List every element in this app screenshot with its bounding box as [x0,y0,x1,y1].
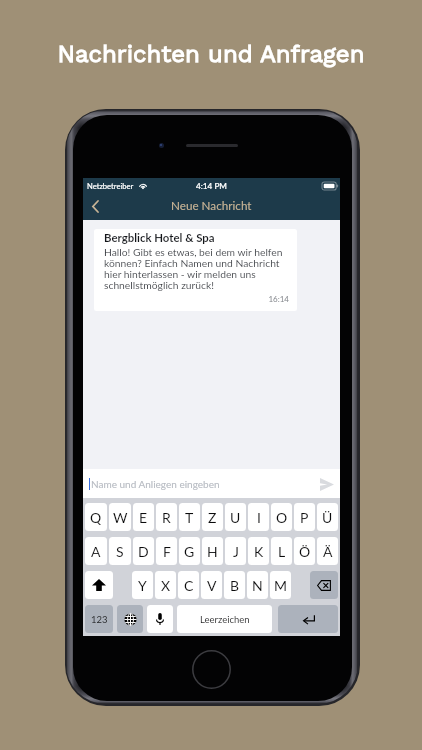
staticText: G [184,543,195,560]
button[interactable]: X [155,571,176,599]
button[interactable]: W [109,503,131,531]
staticText: B [230,577,240,594]
button[interactable]: Ü [317,503,338,531]
staticText: 4:14 PM [196,181,227,191]
staticText: T [185,509,194,526]
button[interactable]: Umschalt [85,571,113,599]
button[interactable]: J [225,537,246,565]
staticText: N [252,577,263,594]
button[interactable]: Sprache [117,605,143,633]
button[interactable]: P [294,503,315,531]
staticText: V [207,577,217,594]
button[interactable]: S [109,537,131,565]
staticText: Nachrichten und Anfragen [0,40,422,68]
button[interactable]: Senden [317,474,337,494]
staticText: A [91,543,101,560]
button[interactable]: I [248,503,269,531]
staticText: C [184,577,194,594]
staticText: Y [138,577,147,594]
staticText: U [230,509,241,526]
button[interactable]: Leerzeichen [177,605,272,633]
button[interactable]: O [271,503,292,531]
staticText: Ä [323,543,333,560]
button[interactable]: Zurück [83,194,107,220]
staticText: J [233,543,239,560]
staticText: F [163,543,171,560]
button[interactable]: Q [85,503,107,531]
staticText: 123 [91,614,108,625]
staticText: D [138,543,149,560]
button[interactable]: V [201,571,222,599]
button[interactable]: T [179,503,200,531]
button[interactable]: Bergblick Hotel & Spa [94,229,297,311]
staticText: Ü [322,509,333,526]
button[interactable]: N [247,571,268,599]
button[interactable]: G [179,537,200,565]
staticText: Netzbetreiber [87,181,134,190]
button[interactable]: Ä [317,537,338,565]
staticText: O [276,509,288,526]
button[interactable]: Z [202,503,223,531]
staticText: Ö [299,543,311,560]
button[interactable]: B [224,571,245,599]
staticText: K [254,543,264,560]
button[interactable]: Eingabe [278,605,338,633]
button[interactable]: Y [132,571,153,599]
button[interactable]: E [133,503,154,531]
staticText: P [300,509,309,526]
button[interactable]: R [156,503,177,531]
button[interactable]: H [202,537,223,565]
staticText: S [116,543,124,560]
staticText: Leerzeichen [200,614,250,625]
button[interactable]: K [248,537,269,565]
button[interactable]: Zahlen [85,605,113,633]
button[interactable]: U [225,503,246,531]
staticText: W [113,509,128,526]
button[interactable]: M [270,571,291,599]
staticText: H [207,543,218,560]
button[interactable]: C [178,571,199,599]
button[interactable]: D [133,537,154,565]
staticText: 16:14 [94,294,289,304]
button[interactable]: Löschen [310,571,338,599]
button[interactable]: Ö [294,537,315,565]
staticText: Hallo! Gibt es etwas, bei dem wir helfen… [104,246,291,291]
staticText: R [162,509,171,526]
button[interactable]: Diktieren [147,605,173,633]
staticText: M [274,577,287,594]
staticText: Q [90,509,102,526]
staticText: L [278,543,286,560]
button[interactable]: L [271,537,292,565]
button[interactable]: F [156,537,177,565]
staticText: E [139,509,148,526]
staticText: Neue Nachricht [171,198,252,212]
staticText: Name und Anliegen eingeben [91,478,220,490]
button[interactable]: A [85,537,107,565]
staticText: I [257,509,261,526]
staticText: Z [208,509,217,526]
staticText: X [161,577,171,594]
staticText: Bergblick Hotel & Spa [104,231,215,245]
